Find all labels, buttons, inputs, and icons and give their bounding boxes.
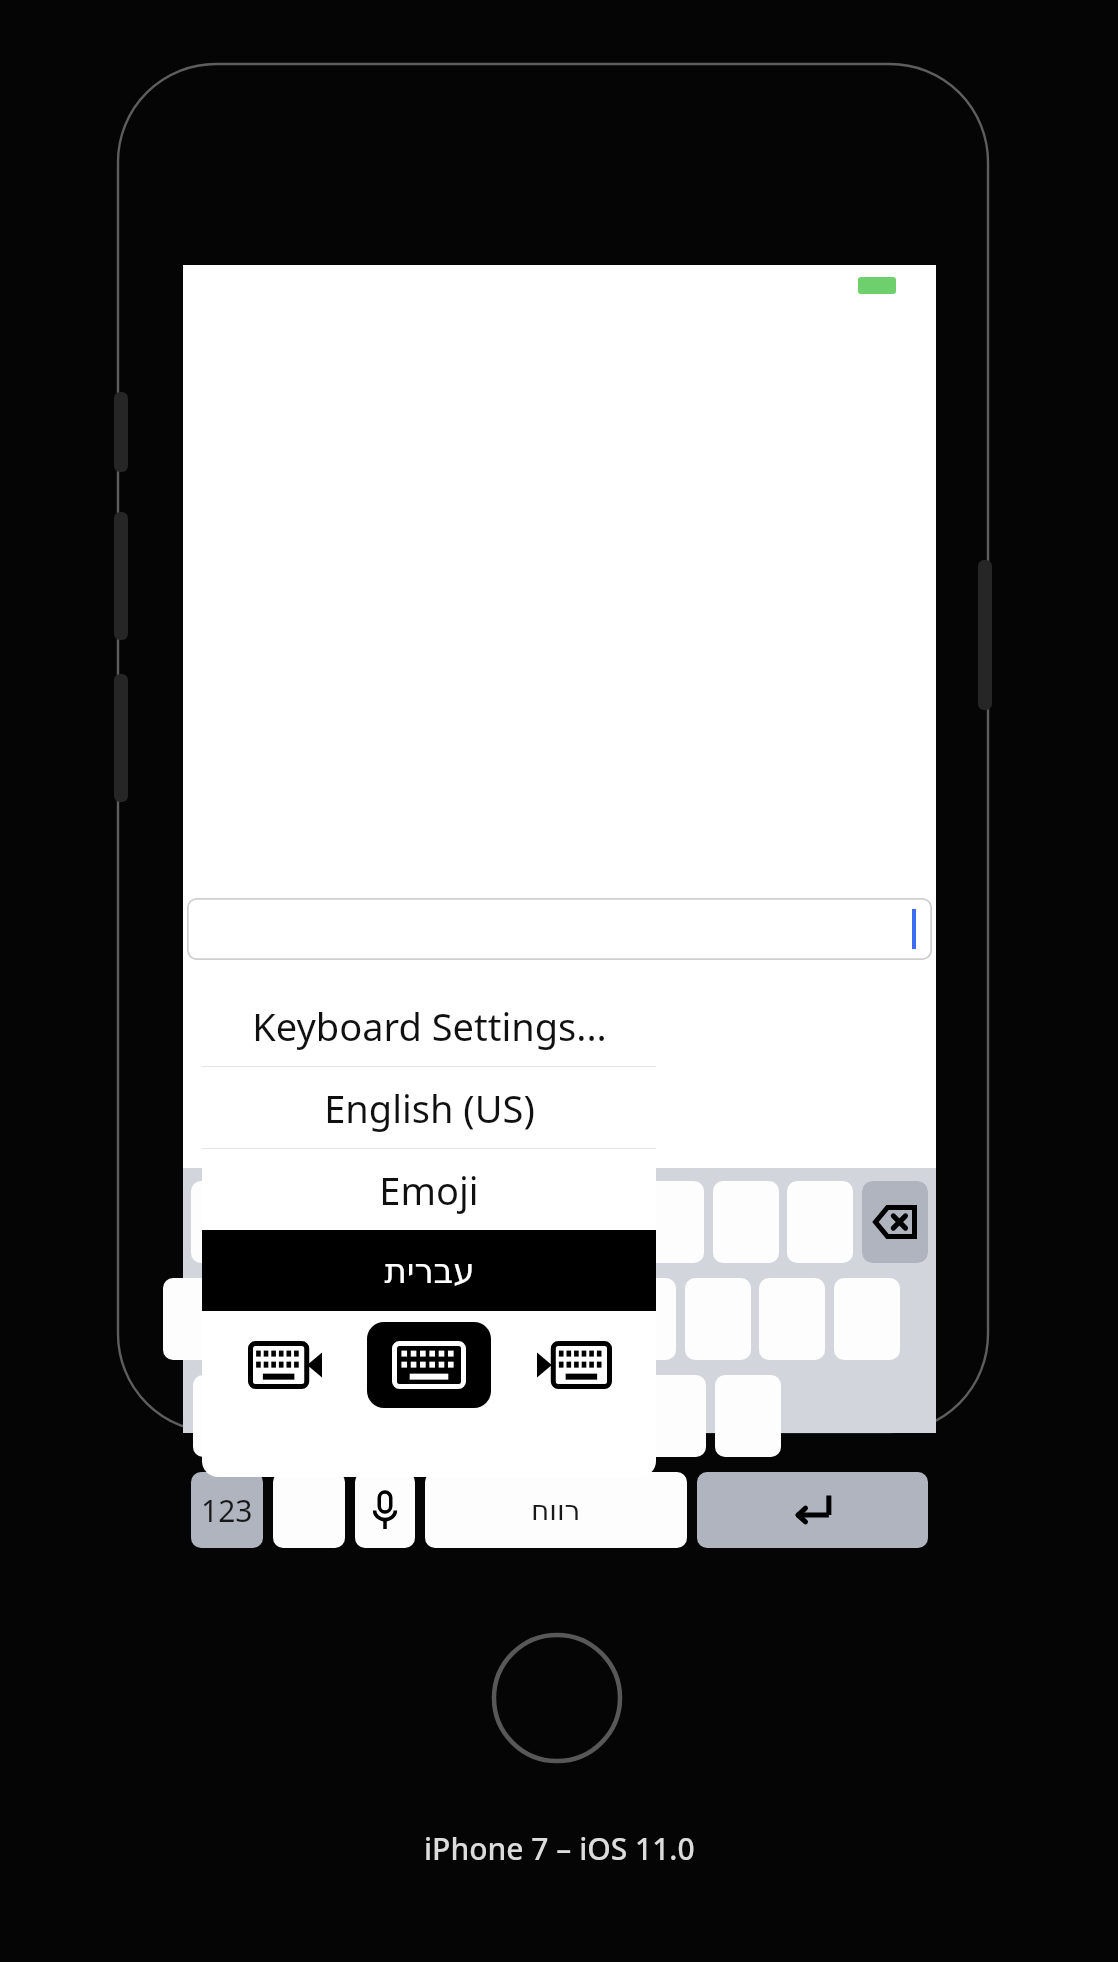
button[interactable]: Delete <box>862 1181 928 1263</box>
button[interactable] <box>566 1375 632 1457</box>
button[interactable] <box>266 1181 332 1263</box>
button[interactable]: English (US) <box>202 1067 656 1148</box>
button[interactable]: Return <box>697 1472 928 1548</box>
button[interactable] <box>187 898 932 960</box>
button[interactable]: רווח <box>425 1472 687 1548</box>
button[interactable] <box>759 1278 825 1360</box>
button[interactable] <box>640 1375 706 1457</box>
button[interactable] <box>536 1278 602 1360</box>
button[interactable] <box>312 1278 378 1360</box>
staticText: עברית <box>384 1251 475 1291</box>
button[interactable] <box>191 1181 257 1263</box>
button[interactable] <box>638 1181 704 1263</box>
button[interactable] <box>834 1278 900 1360</box>
button[interactable] <box>238 1278 304 1360</box>
staticText: English (US) <box>324 1082 535 1134</box>
button[interactable] <box>415 1181 481 1263</box>
button[interactable] <box>787 1181 853 1263</box>
button[interactable] <box>387 1278 453 1360</box>
button[interactable] <box>268 1375 334 1457</box>
button[interactable] <box>862 1181 928 1263</box>
button[interactable] <box>713 1181 779 1263</box>
button[interactable]: Keyboard Settings... <box>202 985 656 1066</box>
staticText: 123 <box>201 1490 253 1531</box>
button[interactable]: 123 <box>191 1472 263 1548</box>
button[interactable]: Next keyboard <box>527 1335 621 1395</box>
button[interactable]: Keyboard <box>367 1322 491 1408</box>
button[interactable]: עברית <box>202 1230 656 1311</box>
button[interactable] <box>715 1375 781 1457</box>
staticText: רווח <box>531 1494 581 1527</box>
button[interactable]: Previous keyboard <box>238 1335 332 1395</box>
button[interactable] <box>417 1375 483 1457</box>
button[interactable] <box>193 1375 259 1457</box>
button[interactable] <box>342 1375 408 1457</box>
staticText: iPhone 7 – iOS 11.0 <box>424 1828 695 1869</box>
button[interactable] <box>163 1278 229 1360</box>
button[interactable] <box>685 1278 751 1360</box>
button[interactable]: Dictate <box>355 1472 415 1548</box>
button[interactable] <box>273 1472 345 1548</box>
staticText: Keyboard Settings... <box>252 1000 607 1052</box>
button[interactable] <box>491 1375 557 1457</box>
button[interactable] <box>610 1278 676 1360</box>
button[interactable] <box>489 1181 555 1263</box>
button[interactable] <box>340 1181 406 1263</box>
button[interactable] <box>564 1181 630 1263</box>
button[interactable] <box>461 1278 527 1360</box>
staticText: Emoji <box>379 1164 479 1216</box>
button[interactable]: Emoji <box>202 1149 656 1230</box>
